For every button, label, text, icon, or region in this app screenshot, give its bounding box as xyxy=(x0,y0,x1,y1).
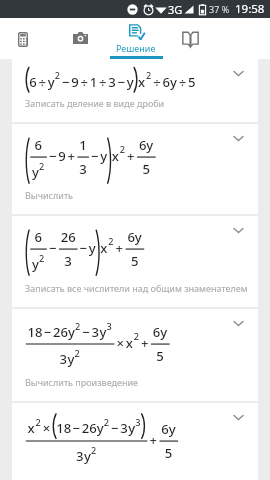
staticText: 19:58 xyxy=(235,1,265,17)
staticText: Записать все числители над общим знамена… xyxy=(25,282,248,294)
staticText: 37 % xyxy=(209,3,230,15)
button[interactable]: Развернуть xyxy=(227,219,249,241)
staticText: Записать деление в виде дроби xyxy=(25,97,165,109)
button[interactable]: Записать все числители над общим знамена… xyxy=(12,216,258,307)
staticText: 3G xyxy=(168,2,183,17)
button[interactable]: Развернуть xyxy=(227,127,249,149)
button[interactable]: Развернуть xyxy=(227,62,249,84)
button[interactable]: Развернуть xyxy=(227,406,249,428)
button[interactable]: Камера xyxy=(52,18,108,59)
staticText: Вычислить произведение xyxy=(25,376,139,388)
staticText: Вычислить xyxy=(25,189,73,201)
button[interactable]: Калькулятор xyxy=(0,18,46,59)
button[interactable]: Вычислить xyxy=(12,124,258,214)
staticText: Решение xyxy=(116,42,156,54)
button[interactable]: Вычислить произведение xyxy=(12,309,258,401)
button[interactable]: Развернуть xyxy=(227,312,249,334)
button[interactable]: Решение xyxy=(109,18,163,59)
button[interactable]: Записать деление в виде дроби xyxy=(12,59,258,122)
button[interactable]: Развернуть xyxy=(12,403,258,480)
button[interactable]: Учебник xyxy=(163,18,217,59)
